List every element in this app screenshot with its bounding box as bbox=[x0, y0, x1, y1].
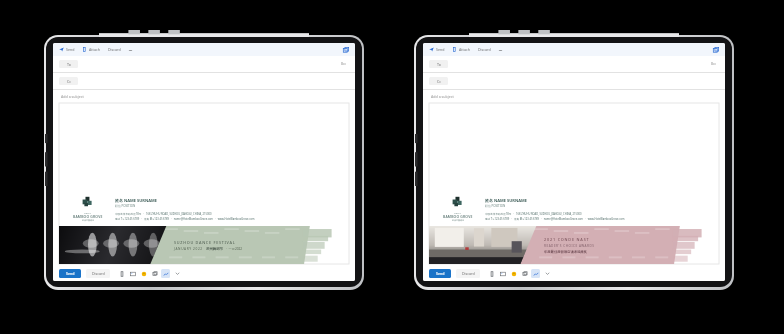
button[interactable]: Insert picture bbox=[128, 269, 137, 278]
button[interactable]: Add a subject bbox=[423, 90, 725, 103]
staticText: Bcc bbox=[341, 62, 347, 66]
button[interactable]: Open in new window bbox=[342, 46, 350, 54]
staticText: READER'S CHOICE AWARDS bbox=[544, 244, 595, 248]
button[interactable]: Cc bbox=[59, 77, 78, 85]
button[interactable]: Discard bbox=[106, 46, 123, 53]
button[interactable]: Insert picture bbox=[498, 269, 507, 278]
button[interactable]: Attach file bbox=[487, 269, 496, 278]
staticText: 中国苏州市姑苏区18号 · 168 ZHUHU ROAD, SUZHOU, JI… bbox=[485, 212, 582, 216]
button[interactable]: Add a subject bbox=[53, 90, 355, 103]
button[interactable]: To bbox=[429, 60, 448, 68]
staticText: 职位 POSITION bbox=[115, 204, 136, 208]
staticText: 苏州竹园酒店 bbox=[452, 219, 464, 222]
button[interactable]: Signature bbox=[531, 269, 540, 278]
staticText: Cc bbox=[67, 79, 71, 84]
staticText: HOTEL bbox=[84, 212, 92, 214]
staticText: Discard bbox=[108, 47, 121, 52]
staticText: HOTEL bbox=[454, 212, 462, 214]
button[interactable]: More options bbox=[497, 47, 503, 53]
button[interactable]: Link bbox=[150, 269, 159, 278]
staticText: Discard bbox=[462, 271, 475, 276]
button[interactable]: Bcc bbox=[709, 60, 719, 68]
staticText: Discard bbox=[478, 47, 491, 52]
staticText: To bbox=[67, 62, 71, 67]
button[interactable]: Attach file bbox=[117, 269, 126, 278]
staticText: Attach bbox=[89, 47, 100, 52]
staticText: Send bbox=[66, 271, 75, 276]
button[interactable]: To bbox=[59, 60, 78, 68]
button[interactable]: Attach bbox=[451, 46, 471, 53]
button[interactable]: Discard bbox=[476, 46, 493, 53]
staticText: 职位 POSITION bbox=[485, 204, 506, 208]
staticText: 姓名 NAME SURNAME bbox=[485, 198, 527, 203]
button[interactable]: Send bbox=[59, 269, 81, 278]
staticText: 电话 T:+123 45 6789 · 传真 M:+123 45 6789 · … bbox=[115, 217, 255, 221]
staticText: Send bbox=[436, 271, 445, 276]
staticText: Send bbox=[436, 47, 445, 52]
staticText: 苏州竹园酒店 bbox=[82, 219, 94, 222]
staticText: Discard bbox=[92, 271, 105, 276]
staticText: Add a subject bbox=[61, 94, 84, 99]
button[interactable]: Send bbox=[429, 269, 451, 278]
button[interactable]: More formatting options bbox=[173, 269, 181, 277]
button[interactable]: Emoji bbox=[509, 269, 518, 278]
staticText: 电话 T:+123 45 6789 · 传真 M:+123 45 6789 · … bbox=[485, 217, 625, 221]
staticText: 2021 CONDE NAST bbox=[544, 237, 590, 242]
button[interactable]: Attach bbox=[81, 46, 101, 53]
button[interactable]: More options bbox=[127, 47, 133, 53]
button[interactable]: Signature bbox=[161, 269, 170, 278]
button[interactable]: Discard bbox=[456, 269, 480, 278]
staticText: 中国苏州市姑苏区18号 · 168 ZHUHU ROAD, SUZHOU, JI… bbox=[115, 212, 212, 216]
staticText: Add a subject bbox=[431, 94, 454, 99]
staticText: Cc bbox=[437, 79, 441, 84]
staticText: Attach bbox=[459, 47, 470, 52]
staticText: Send bbox=[66, 47, 75, 52]
staticText: Bcc bbox=[711, 62, 717, 66]
button[interactable]: Link bbox=[520, 269, 529, 278]
staticText: BAMBOO GROVE bbox=[73, 214, 103, 219]
staticText: 年度最佳度假酒店读者选择奖 bbox=[544, 250, 587, 254]
button[interactable]: Emoji bbox=[139, 269, 148, 278]
staticText: SUZHOU DANCE FESTIVAL bbox=[174, 240, 236, 245]
staticText: · 一月2022 bbox=[226, 247, 243, 251]
staticText: 姓名 NAME SURNAME bbox=[115, 198, 157, 203]
button[interactable]: Discard bbox=[86, 269, 110, 278]
button[interactable]: Bcc bbox=[339, 60, 349, 68]
staticText: 苏州舞蹈节 bbox=[206, 247, 223, 251]
staticText: JANUARY 2022 bbox=[174, 247, 203, 251]
button[interactable]: Send bbox=[58, 46, 76, 53]
staticText: To bbox=[437, 62, 441, 67]
button[interactable]: Cc bbox=[429, 77, 448, 85]
staticText: BAMBOO GROVE bbox=[443, 214, 473, 219]
button[interactable]: More formatting options bbox=[543, 269, 551, 277]
button[interactable]: Send bbox=[428, 46, 446, 53]
button[interactable]: Open in new window bbox=[712, 46, 720, 54]
